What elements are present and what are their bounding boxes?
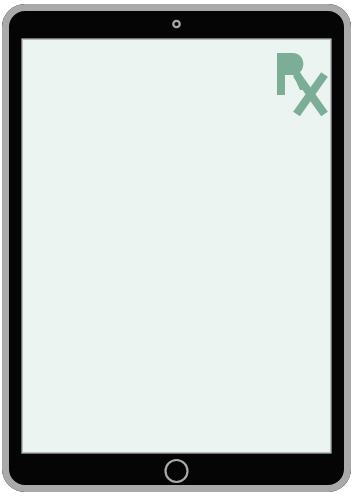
button[interactable]: Blank prescription page with Rx symbol [0, 0, 353, 500]
